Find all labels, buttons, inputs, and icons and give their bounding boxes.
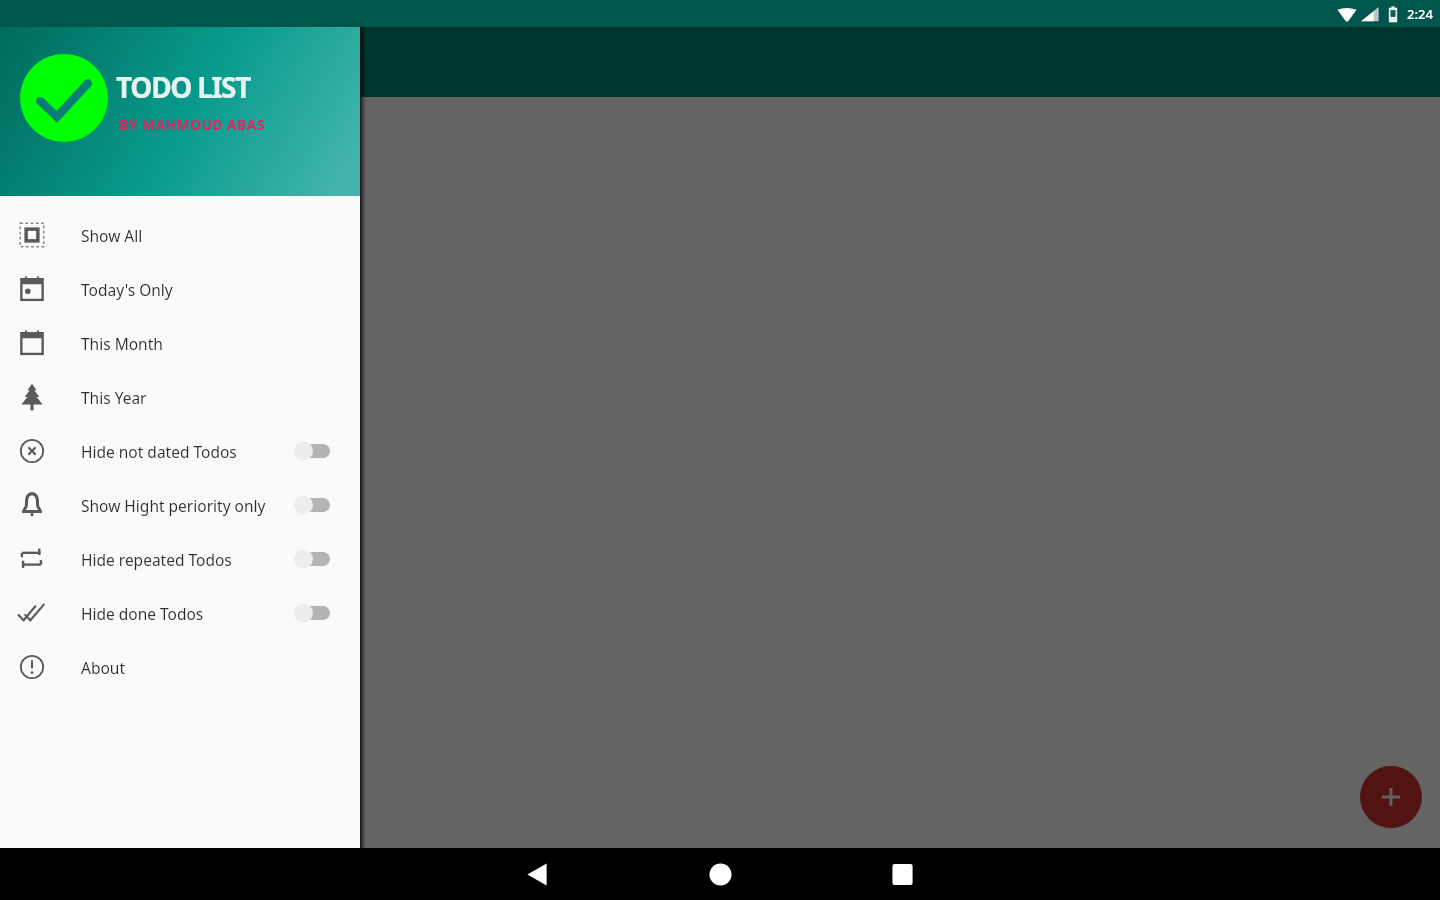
- staticText: This Year: [81, 387, 147, 408]
- staticText: TODO LIST: [116, 68, 251, 106]
- button[interactable]: Hide not dated Todos: [0, 424, 360, 478]
- button[interactable]: Hide done Todos: [0, 586, 360, 640]
- button[interactable]: Close navigation drawer: [0, 27, 1440, 848]
- staticText: This Month: [81, 333, 163, 354]
- staticText: BY MAHMOUD ABAS: [119, 115, 265, 134]
- button[interactable]: Home: [630, 848, 810, 900]
- staticText: About: [81, 657, 125, 678]
- staticText: 2:24: [1407, 5, 1433, 23]
- button[interactable]: Today's Only: [0, 262, 360, 316]
- staticText: Show Hight periority only: [81, 495, 266, 516]
- button[interactable]: Hide repeated Todos: [0, 532, 360, 586]
- button[interactable]: Recents: [812, 848, 992, 900]
- staticText: Show All: [81, 225, 143, 246]
- staticText: Hide not dated Todos: [81, 441, 237, 462]
- button[interactable]: Toggle: [296, 548, 338, 570]
- button[interactable]: Show Hight periority only: [0, 478, 360, 532]
- button[interactable]: Toggle: [296, 440, 338, 462]
- staticText: Hide done Todos: [81, 603, 204, 624]
- staticText: Hide repeated Todos: [81, 549, 232, 570]
- button[interactable]: About: [0, 640, 360, 694]
- button[interactable]: Back: [447, 848, 627, 900]
- button[interactable]: Toggle: [296, 494, 338, 516]
- button[interactable]: Add todo: [1360, 766, 1422, 828]
- button[interactable]: This Month: [0, 316, 360, 370]
- button[interactable]: Toggle: [296, 602, 338, 624]
- button[interactable]: This Year: [0, 370, 360, 424]
- staticText: Today's Only: [81, 279, 173, 300]
- button[interactable]: Show All: [0, 208, 360, 262]
